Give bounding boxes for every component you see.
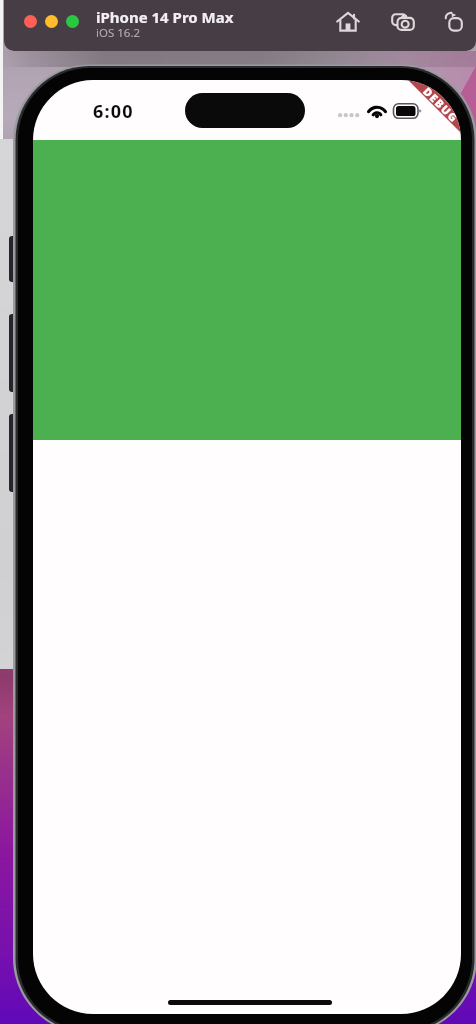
button[interactable]: Screenshot xyxy=(391,10,415,34)
button[interactable]: Close xyxy=(24,15,37,28)
button[interactable]: Minimize xyxy=(45,15,58,28)
staticText: 6:00 xyxy=(93,99,134,124)
button[interactable]: Maximize xyxy=(66,15,79,28)
staticText: iPhone 14 Pro Max xyxy=(96,7,234,27)
staticText: iOS 16.2 xyxy=(96,25,141,41)
staticText: DEBUG xyxy=(420,84,461,125)
button[interactable]: Home xyxy=(336,10,360,34)
button[interactable]: Rotate xyxy=(445,10,469,34)
